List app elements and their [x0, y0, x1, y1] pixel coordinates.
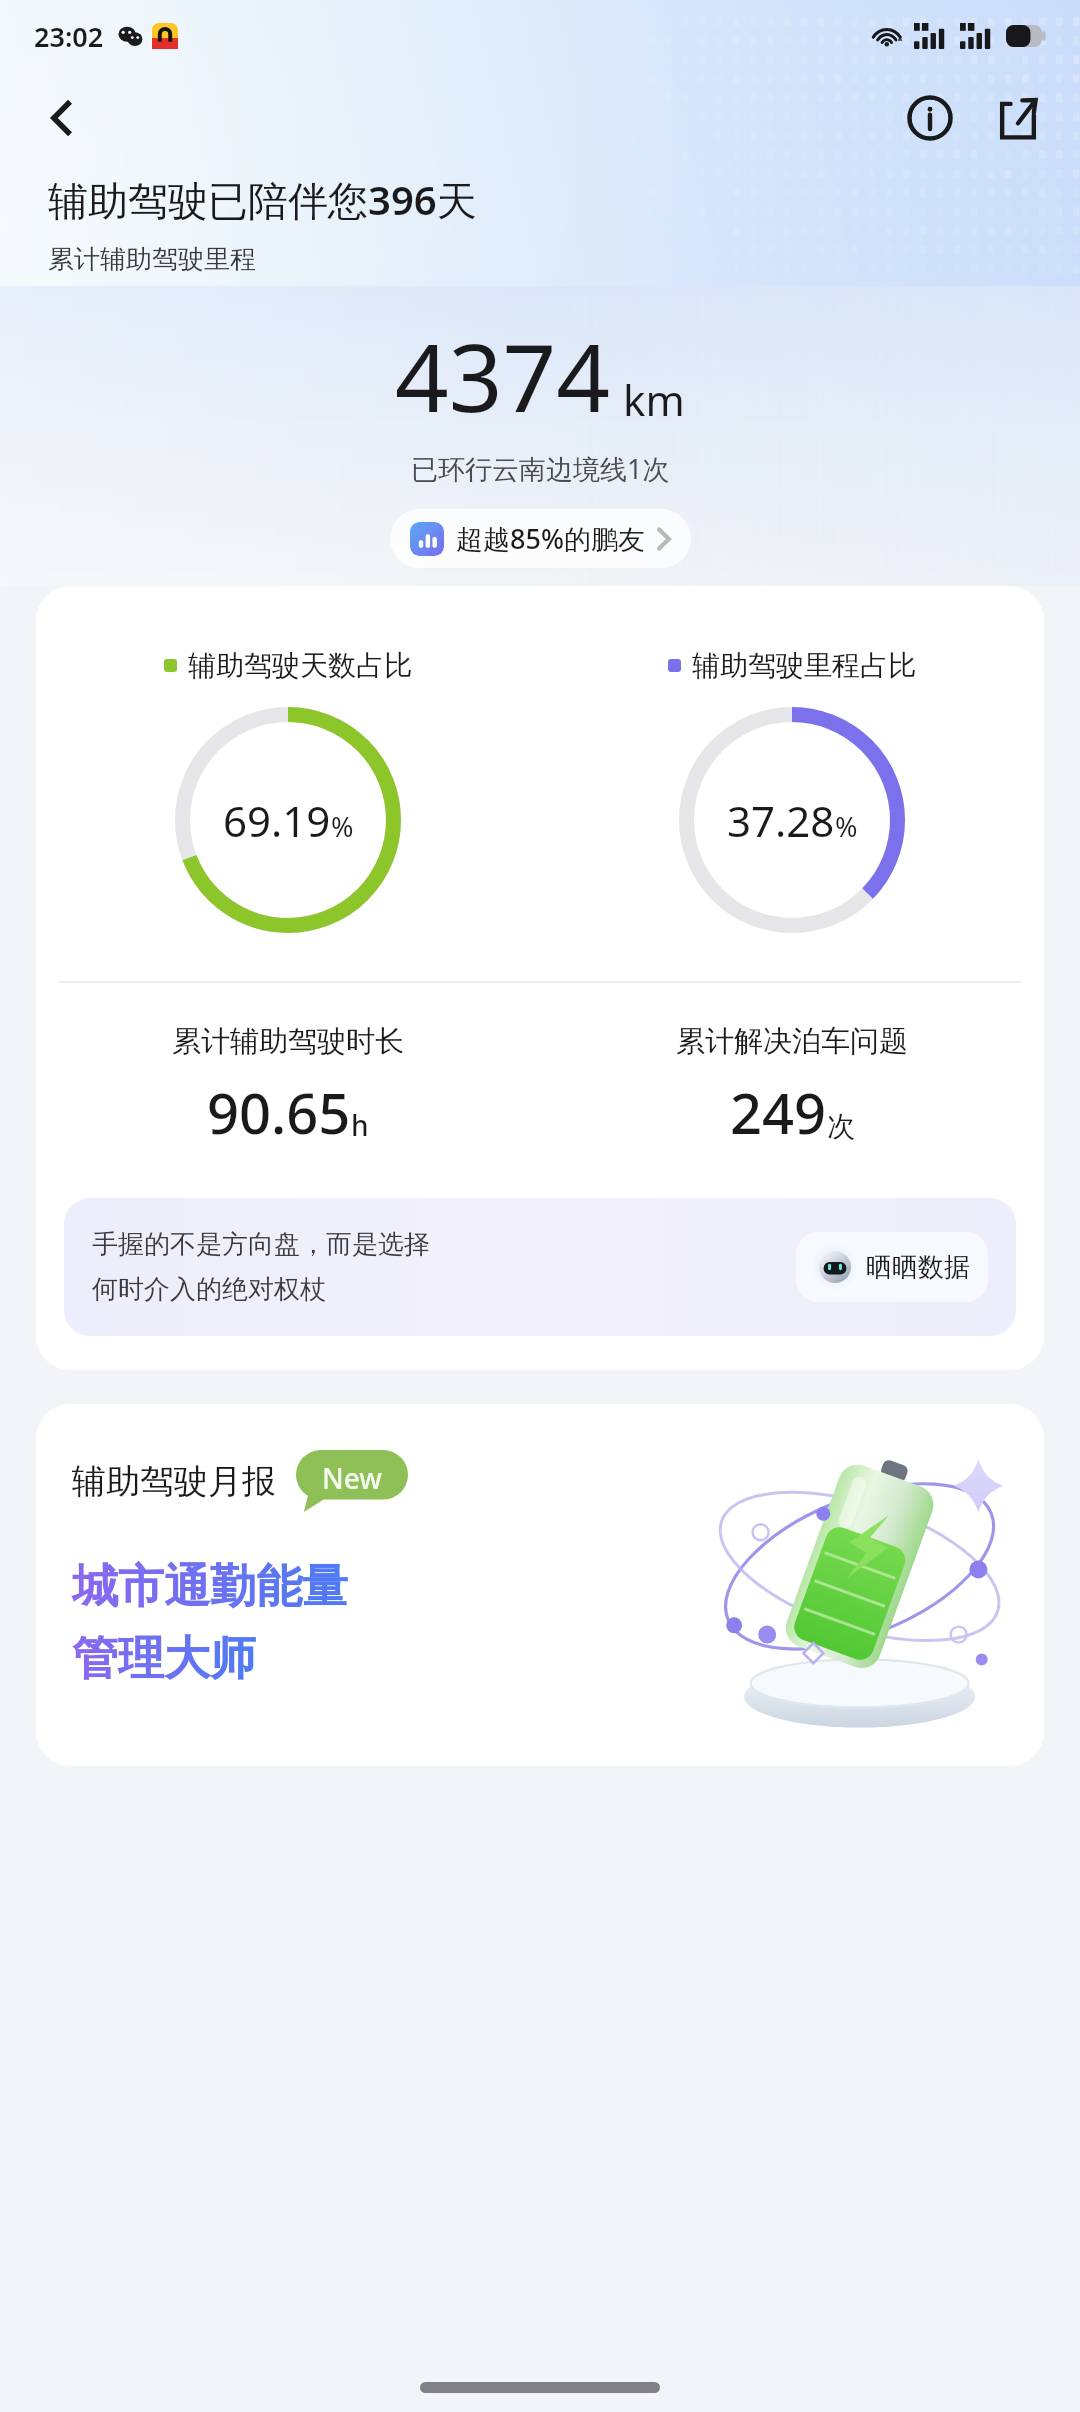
staticText: 手握的不是方向盘，而是选择: [92, 1228, 430, 1261]
staticText: New: [322, 1459, 382, 1497]
staticText: 23:02: [34, 18, 104, 55]
staticText: 已环行云南边境线1次: [411, 450, 670, 487]
staticText: 管理大师: [72, 1630, 256, 1688]
staticText: 249: [730, 1074, 827, 1150]
staticText: 何时介入的绝对权杖: [92, 1273, 326, 1306]
staticText: %: [331, 808, 354, 845]
staticText: 累计辅助驾驶时长: [172, 1023, 404, 1060]
button[interactable]: Share: [982, 82, 1054, 154]
staticText: 37.28: [727, 792, 835, 849]
staticText: 累计解决泊车问题: [676, 1023, 908, 1060]
staticText: km: [623, 371, 685, 428]
staticText: 辅助驾驶天数占比: [188, 648, 412, 683]
staticText: 辅助驾驶里程占比: [692, 648, 916, 683]
staticText: 超越85%的鹏友: [456, 520, 645, 557]
staticText: 69.19: [223, 792, 331, 849]
staticText: 4374: [395, 312, 611, 440]
staticText: %: [835, 808, 858, 845]
staticText: 晒晒数据: [866, 1251, 970, 1284]
button[interactable]: Back: [26, 82, 98, 154]
button[interactable]: 辅助驾驶月报: [36, 1404, 1044, 1766]
staticText: 次: [827, 1109, 855, 1144]
staticText: h: [351, 1106, 369, 1144]
staticText: 90.65: [207, 1074, 351, 1150]
staticText: 累计辅助驾驶里程: [48, 243, 256, 276]
staticText: 辅助驾驶已陪伴您396天: [48, 172, 477, 227]
staticText: 辅助驾驶月报: [72, 1460, 276, 1503]
button[interactable]: Info: [894, 82, 966, 154]
staticText: 城市通勤能量: [72, 1558, 348, 1616]
button[interactable]: 手握的不是方向盘，而是选择: [64, 1198, 1016, 1336]
button[interactable]: 超越85%的鹏友: [390, 509, 691, 568]
button[interactable]: 晒晒数据: [796, 1232, 988, 1302]
